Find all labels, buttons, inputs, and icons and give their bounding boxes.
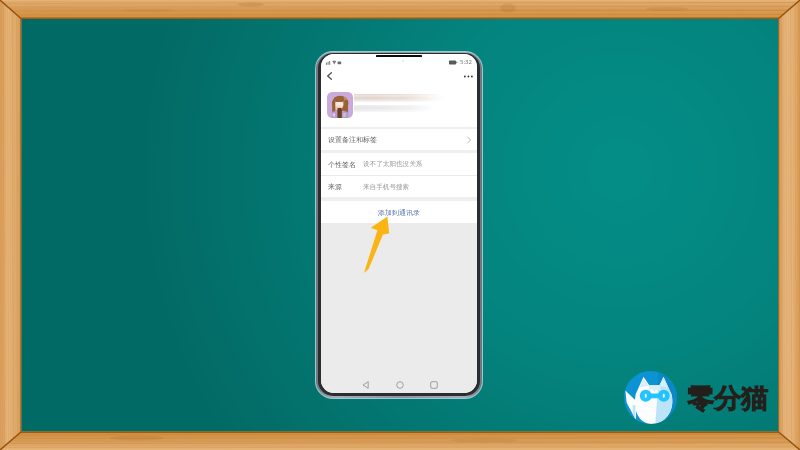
staticText: 添加到通讯录: [378, 208, 420, 217]
button[interactable]: 设置备注和标签: [321, 129, 477, 150]
staticText: 设不了太阳也没关系: [363, 160, 423, 168]
staticText: 个性签名: [328, 160, 356, 169]
button[interactable]: [321, 85, 477, 127]
staticText: 来自手机号搜索: [363, 183, 410, 191]
button[interactable]: Recents: [425, 376, 443, 393]
staticText: 来源: [328, 182, 342, 191]
button[interactable]: 来源: [321, 176, 477, 197]
button[interactable]: Home: [391, 376, 409, 393]
staticText: 设置备注和标签: [328, 135, 377, 144]
button[interactable]: Back: [321, 67, 339, 85]
staticText: 零分猫: [687, 382, 768, 416]
button[interactable]: 个性签名: [321, 153, 477, 175]
button[interactable]: More options: [459, 67, 477, 85]
staticText: 5:32: [460, 58, 472, 66]
button[interactable]: Back: [357, 376, 375, 393]
button[interactable]: 添加到通讯录: [321, 201, 477, 223]
